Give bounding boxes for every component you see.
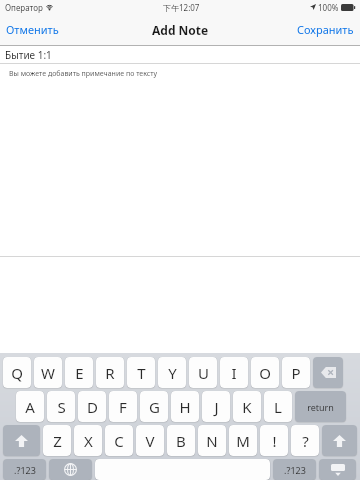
button[interactable]: Shift [3,425,40,456]
staticText: A [25,397,35,417]
button[interactable]: Space [95,459,270,480]
button[interactable]: .?123 [3,459,46,480]
button[interactable]: Switch keyboard [49,459,92,480]
staticText: W [41,363,55,383]
button[interactable]: ! [260,425,288,456]
staticText: F [119,397,127,417]
staticText: B [176,431,186,451]
staticText: P [291,363,301,383]
button[interactable]: W [34,357,62,388]
staticText: D [87,397,98,417]
button[interactable]: ? [291,425,319,456]
button[interactable]: R [96,357,124,388]
staticText: Y [168,363,177,383]
button[interactable]: Backspace [313,357,343,388]
button[interactable]: B [167,425,195,456]
button[interactable]: T [127,357,155,388]
staticText: M [236,431,250,451]
button[interactable]: M [229,425,257,456]
button[interactable]: Shift [322,425,357,456]
staticText: J [214,397,219,417]
button[interactable]: C [105,425,133,456]
button[interactable]: K [233,391,261,422]
button[interactable]: J [202,391,230,422]
staticText: Q [11,363,23,383]
staticText: T [137,363,146,383]
button[interactable]: X [74,425,102,456]
staticText: R [105,363,115,383]
button[interactable]: P [282,357,310,388]
staticText: C [114,431,124,451]
button[interactable]: L [264,391,292,422]
staticText: V [145,431,155,451]
staticText: 下午12:07 [163,2,200,13]
staticText: X [84,431,93,451]
staticText: H [179,397,191,417]
button[interactable]: D [78,391,106,422]
staticText: S [57,397,66,417]
button[interactable]: Y [158,357,186,388]
staticText: 100% [318,2,339,13]
button[interactable]: G [140,391,168,422]
button[interactable]: I [220,357,248,388]
staticText: G [149,397,160,417]
staticText: Вы можете добавить примечание по тексту [9,69,158,79]
button[interactable]: S [47,391,75,422]
button[interactable]: E [65,357,93,388]
staticText: L [274,397,282,417]
staticText: Отменить [6,22,59,37]
staticText: ! [272,431,277,451]
button[interactable]: Сохранить [297,14,354,45]
staticText: Add Note [152,22,209,38]
button[interactable]: return [295,391,346,422]
staticText: O [259,363,271,383]
button[interactable]: Hide keyboard [319,459,356,480]
staticText: Сохранить [297,22,354,37]
button[interactable]: Отменить [6,14,59,45]
staticText: U [198,363,209,383]
staticText: Оператор [5,2,43,13]
button[interactable]: N [198,425,226,456]
button[interactable]: Q [3,357,31,388]
staticText: I [231,363,237,383]
button[interactable]: V [136,425,164,456]
staticText: E [75,363,84,383]
staticText: N [206,431,218,451]
button[interactable]: Z [43,425,71,456]
staticText: ? [302,431,309,451]
button[interactable]: U [189,357,217,388]
button[interactable]: A [16,391,44,422]
button[interactable]: .?123 [273,459,316,480]
staticText: Z [53,431,62,451]
staticText: .?123 [284,464,306,476]
button[interactable]: F [109,391,137,422]
button[interactable]: H [171,391,199,422]
staticText: return [307,401,334,413]
staticText: Бытие 1:1 [5,48,52,62]
button[interactable]: O [251,357,279,388]
staticText: .?123 [14,464,36,476]
staticText: K [242,397,252,417]
